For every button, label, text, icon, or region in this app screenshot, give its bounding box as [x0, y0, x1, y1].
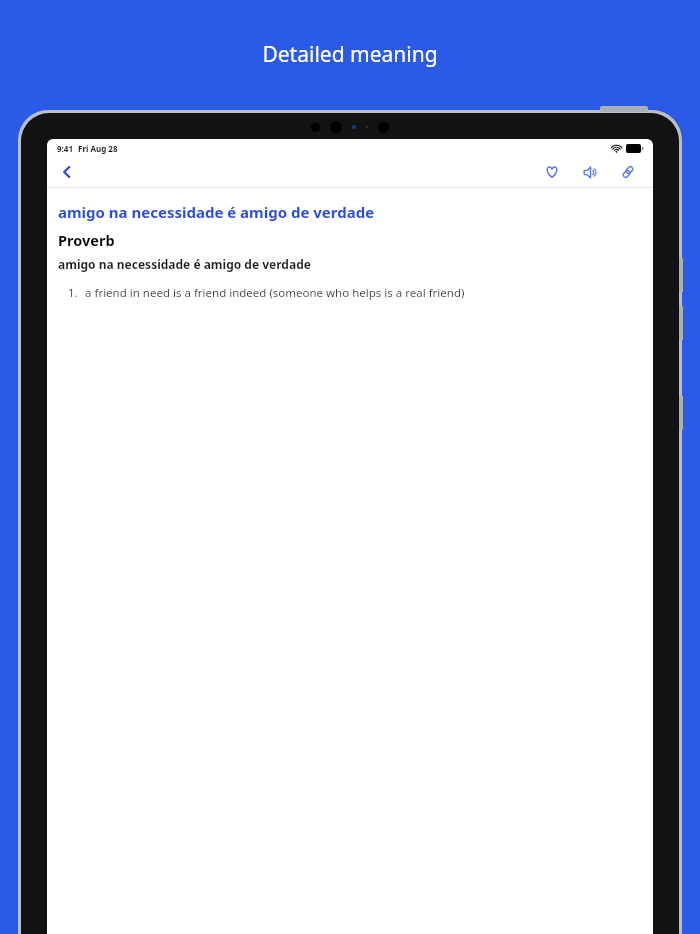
- button[interactable]: Favorite: [539, 159, 565, 185]
- button[interactable]: Pronounce: [577, 159, 603, 185]
- staticText: Fri Aug 28: [78, 143, 118, 154]
- staticText: a friend in need is a friend indeed (som…: [85, 285, 465, 301]
- staticText: amigo na necessidade é amigo de verdade: [58, 256, 311, 272]
- staticText: 1.: [68, 285, 78, 301]
- staticText: Detailed meaning: [0, 40, 700, 69]
- staticText: Proverb: [58, 230, 115, 250]
- button[interactable]: Back: [53, 158, 81, 186]
- staticText: 9:41: [57, 143, 73, 154]
- button[interactable]: Copy link: [615, 159, 641, 185]
- staticText: amigo na necessidade é amigo de verdade: [58, 202, 375, 222]
